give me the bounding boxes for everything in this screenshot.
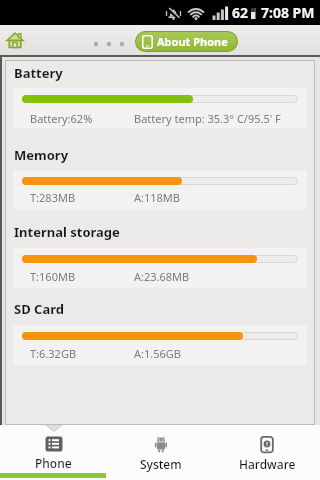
button[interactable]: Battery:62% bbox=[13, 88, 307, 128]
staticText: Hardware bbox=[239, 456, 296, 472]
staticText: System bbox=[140, 456, 182, 472]
staticText: T:160MB bbox=[30, 269, 76, 284]
staticText: Memory bbox=[14, 146, 69, 164]
staticText: A:118MB bbox=[134, 190, 180, 205]
staticText: T:6.32GB bbox=[30, 346, 77, 361]
button[interactable]: T:6.32GB bbox=[13, 325, 307, 365]
button[interactable]: About Phone bbox=[135, 31, 238, 52]
button[interactable]: Phone bbox=[0, 425, 107, 480]
button[interactable] bbox=[6, 31, 24, 49]
button[interactable]: T:283MB bbox=[13, 170, 307, 210]
staticText: 62 bbox=[232, 3, 249, 22]
staticText: 7:08 PM bbox=[261, 3, 315, 22]
staticText: Internal storage bbox=[14, 223, 120, 241]
staticText: A:1.56GB bbox=[134, 346, 181, 361]
staticText: Battery temp: 35.3° C/95.5' F bbox=[134, 111, 281, 126]
button[interactable]: Hardware bbox=[214, 425, 320, 480]
button[interactable]: T:160MB bbox=[13, 248, 307, 288]
staticText: Battery bbox=[14, 64, 63, 82]
staticText: T:283MB bbox=[30, 190, 76, 205]
staticText: About Phone bbox=[157, 34, 228, 49]
staticText: Battery:62% bbox=[30, 111, 93, 126]
button[interactable]: System bbox=[107, 425, 214, 480]
staticText: SD Card bbox=[14, 300, 64, 318]
staticText: A:23.68MB bbox=[134, 269, 190, 284]
staticText: Phone bbox=[35, 455, 72, 471]
